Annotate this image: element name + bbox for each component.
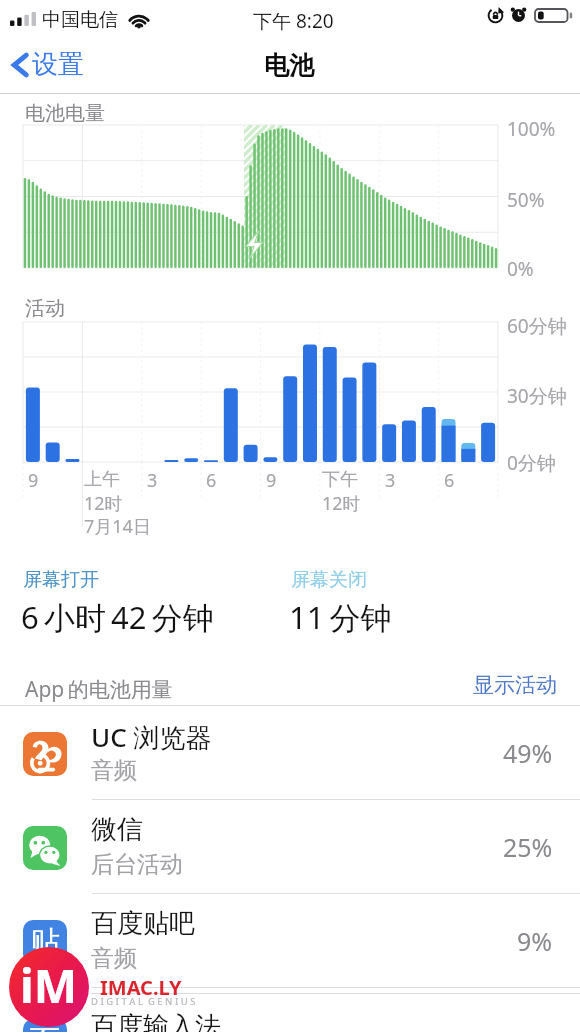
- staticText: 上午: [84, 468, 120, 491]
- staticText: 贴: [30, 923, 60, 961]
- staticText: 9%: [517, 924, 553, 958]
- staticText: 11 分钟: [289, 596, 392, 638]
- button[interactable]: 显示活动: [468, 669, 562, 701]
- staticText: 百度贴吧: [91, 907, 195, 940]
- staticText: 25%: [503, 830, 553, 864]
- staticText: 6: [444, 468, 455, 493]
- staticText: 显示活动: [473, 672, 557, 698]
- staticText: 电池: [264, 50, 314, 81]
- staticText: App 的电池用量: [25, 675, 173, 704]
- staticText: 100%: [507, 116, 556, 142]
- staticText: 9: [266, 468, 277, 493]
- staticText: 设置: [32, 48, 84, 81]
- staticText: 屏幕打开: [23, 568, 99, 592]
- staticText: 6: [206, 468, 217, 493]
- staticText: 0分钟: [507, 450, 556, 476]
- staticText: 后台活动: [91, 850, 183, 879]
- staticText: 30分钟: [507, 383, 567, 409]
- staticText: 中国电信: [42, 8, 118, 32]
- staticText: 50%: [507, 187, 545, 213]
- staticText: 60分钟: [507, 313, 567, 339]
- button[interactable]: UC 浏览器: [0, 706, 580, 800]
- staticText: UC 浏览器: [91, 719, 212, 755]
- staticText: 音频: [91, 944, 137, 973]
- staticText: 活动: [25, 296, 65, 321]
- staticText: 0%: [507, 256, 534, 282]
- staticText: 百: [30, 1022, 60, 1032]
- staticText: 12时: [322, 491, 361, 516]
- staticText: 屏幕关闭: [291, 568, 367, 592]
- button[interactable]: 微信: [0, 800, 580, 894]
- staticText: 3: [147, 468, 158, 493]
- staticText: iM: [20, 954, 78, 1017]
- button[interactable]: 贴: [0, 894, 580, 988]
- staticText: 百度输入法: [91, 1010, 221, 1032]
- staticText: 49%: [503, 736, 553, 770]
- staticText: 下午: [322, 468, 358, 491]
- staticText: 3: [385, 468, 396, 493]
- staticText: D I G I T A L G E N I U S: [91, 995, 196, 1008]
- staticText: 7月14日: [84, 514, 151, 539]
- staticText: 电池电量: [25, 101, 105, 126]
- staticText: 9: [28, 468, 39, 493]
- staticText: IMAC.LY: [100, 974, 182, 1001]
- staticText: 音频: [91, 756, 137, 785]
- staticText: 12时: [84, 491, 123, 516]
- staticText: 下午 8:20: [253, 8, 334, 34]
- staticText: 6 小时 42 分钟: [21, 596, 214, 638]
- staticText: 微信: [91, 813, 143, 846]
- button[interactable]: 设置: [8, 44, 94, 85]
